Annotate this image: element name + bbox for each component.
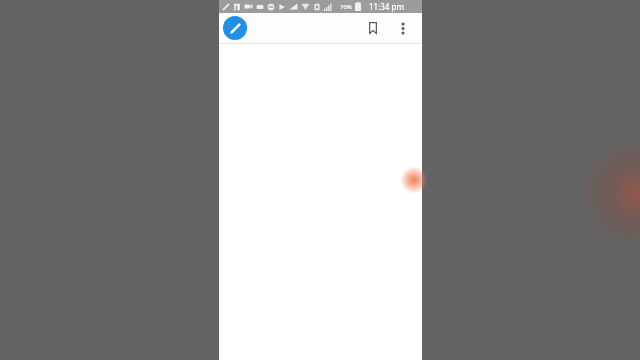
button[interactable]: Bookmark bbox=[358, 13, 388, 43]
button[interactable]: Compose bbox=[223, 16, 247, 40]
staticText: 70% bbox=[340, 3, 352, 11]
staticText: 11:34 pm bbox=[369, 1, 404, 12]
button[interactable]: More options bbox=[388, 13, 418, 43]
